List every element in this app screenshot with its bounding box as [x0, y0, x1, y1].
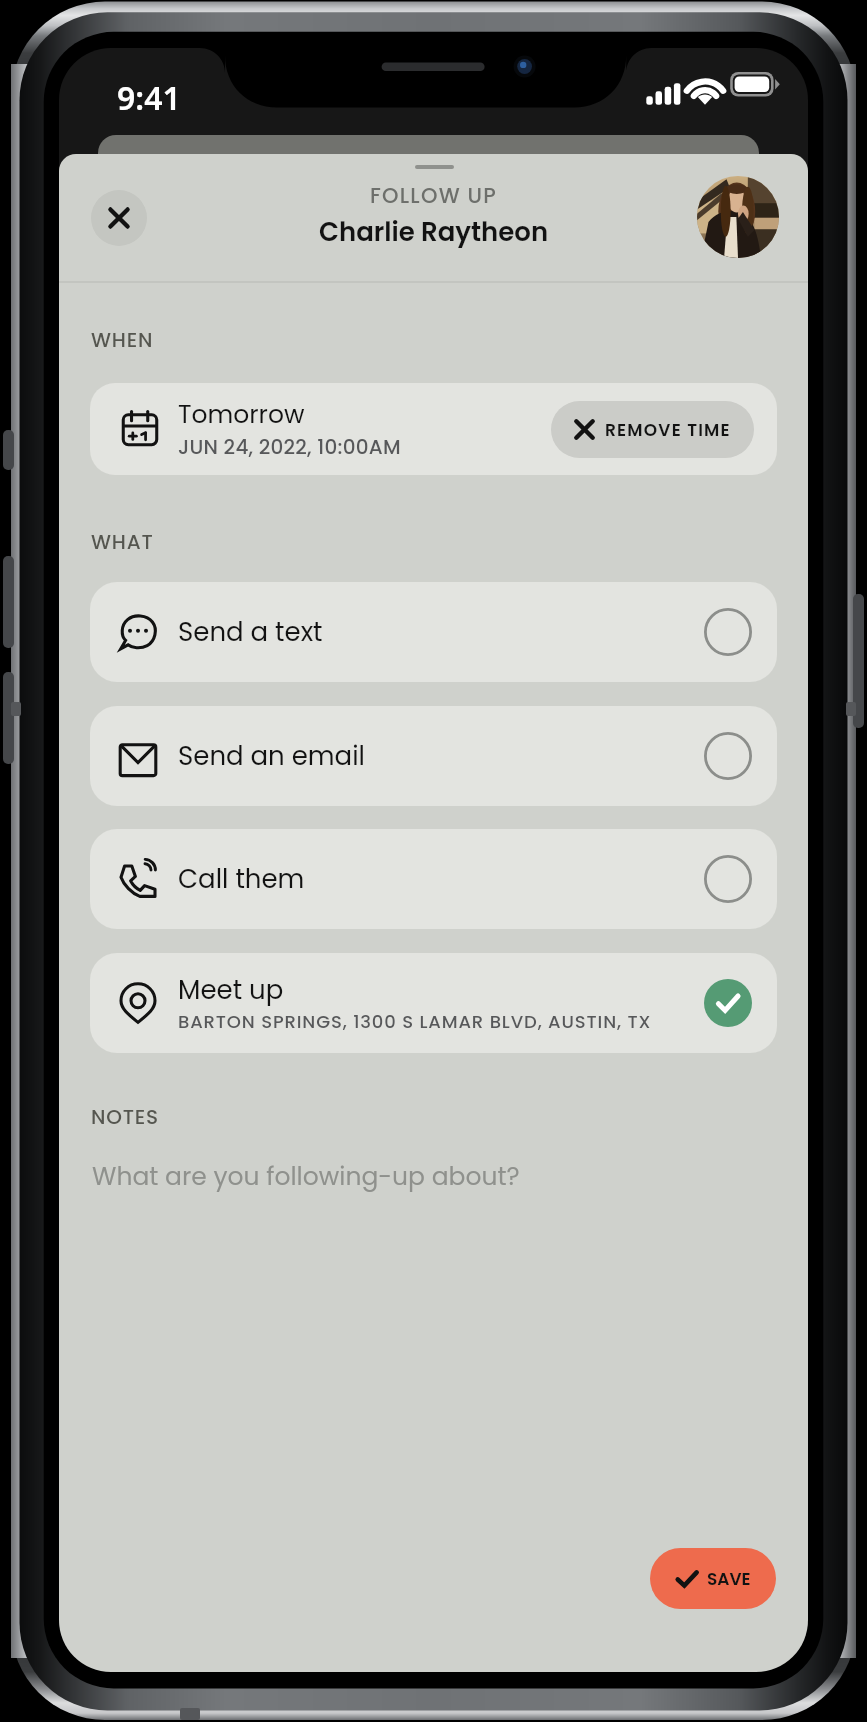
staticText: FOLLOW UP: [370, 181, 498, 210]
other: Selected: [704, 979, 752, 1027]
staticText: WHEN: [91, 326, 154, 354]
staticText: Meet up: [178, 972, 284, 1008]
staticText: NOTES: [91, 1103, 159, 1131]
staticText: 9:41: [117, 76, 181, 120]
staticText: Send a text: [178, 614, 323, 650]
button[interactable]: REMOVE TIME: [551, 401, 754, 458]
button[interactable]: SAVE: [650, 1548, 776, 1609]
staticText: JUN 24, 2022, 10:00AM: [178, 433, 401, 461]
staticText: What are you following-up about?: [92, 1159, 520, 1194]
staticText: Charlie Raytheon: [319, 214, 549, 250]
button[interactable]: Send a text: [90, 582, 777, 682]
staticText: Send an email: [178, 738, 365, 774]
button[interactable]: Meet up: [90, 953, 777, 1053]
staticText: BARTON SPRINGS, 1300 S LAMAR BLVD, AUSTI…: [178, 1009, 652, 1034]
button[interactable]: Contact photo: [697, 176, 779, 258]
staticText: SAVE: [707, 1567, 751, 1591]
staticText: WHAT: [91, 528, 154, 556]
staticText: Call them: [178, 861, 305, 897]
button[interactable]: Send an email: [90, 706, 777, 806]
staticText: Tomorrow: [178, 397, 305, 432]
button[interactable]: Call them: [90, 829, 777, 929]
button[interactable]: Tomorrow: [90, 383, 777, 475]
button[interactable]: Close: [91, 190, 147, 246]
staticText: REMOVE TIME: [605, 418, 731, 442]
